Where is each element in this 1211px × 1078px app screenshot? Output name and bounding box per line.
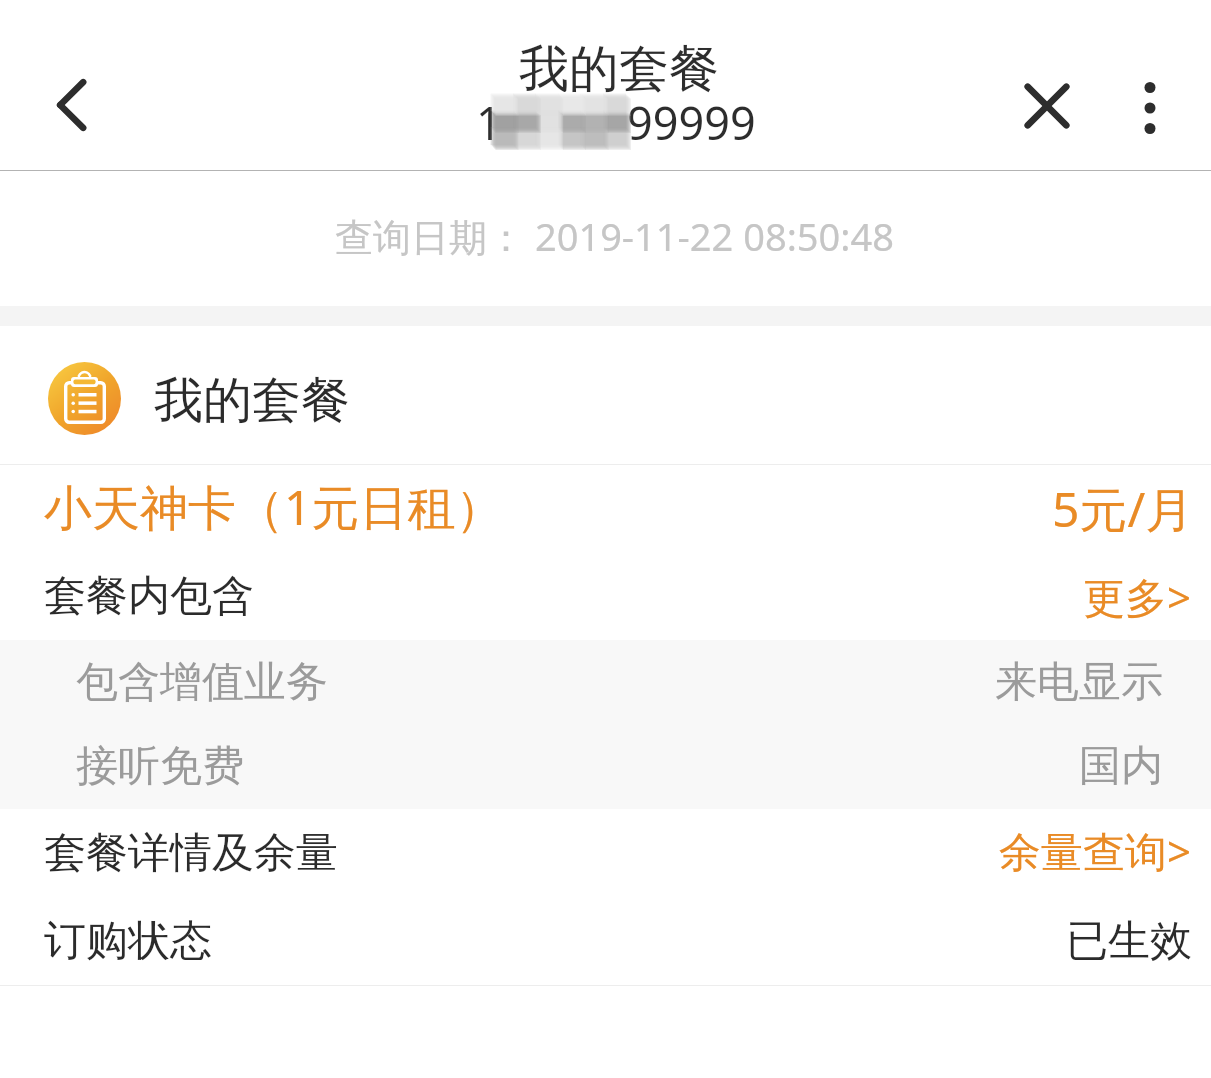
button[interactable]: 接听免费 — [0, 724, 1211, 809]
button[interactable]: Close — [1003, 0, 1107, 171]
button[interactable]: 小天神卡（1元日租） — [0, 465, 1211, 553]
button[interactable]: 包含增值业务 — [0, 640, 1211, 724]
staticText: 我的套餐 — [519, 38, 719, 101]
staticText: 小天神卡（1元日租） — [44, 474, 504, 540]
button[interactable]: Back — [0, 0, 143, 171]
staticText: 包含增值业务 — [76, 656, 328, 709]
staticText: 5元/月 — [1052, 476, 1194, 542]
button[interactable]: 套餐详情及余量 — [0, 809, 1211, 897]
staticText: 套餐详情及余量 — [44, 827, 338, 880]
staticText: 更多> — [1083, 568, 1192, 625]
button[interactable]: 套餐内包含 — [0, 553, 1211, 640]
staticText: 订购状态 — [44, 915, 212, 968]
button[interactable]: 订购状态 — [0, 897, 1211, 985]
button[interactable]: More options — [1107, 0, 1211, 171]
staticText: 接听免费 — [76, 740, 244, 793]
staticText: 套餐内包含 — [44, 570, 254, 623]
staticText: 来电显示 — [995, 656, 1163, 709]
staticText: 查询日期： 2019-11-22 08:50:48 — [335, 210, 894, 262]
staticText: 99999 — [627, 92, 756, 153]
button[interactable]: 我的套餐 — [0, 326, 1211, 464]
staticText: 1 — [476, 92, 502, 153]
staticText: 余量查询> — [999, 822, 1192, 879]
staticText: 我的套餐 — [154, 370, 350, 432]
staticText: 国内 — [1079, 740, 1163, 793]
staticText: 已生效 — [1066, 915, 1192, 968]
